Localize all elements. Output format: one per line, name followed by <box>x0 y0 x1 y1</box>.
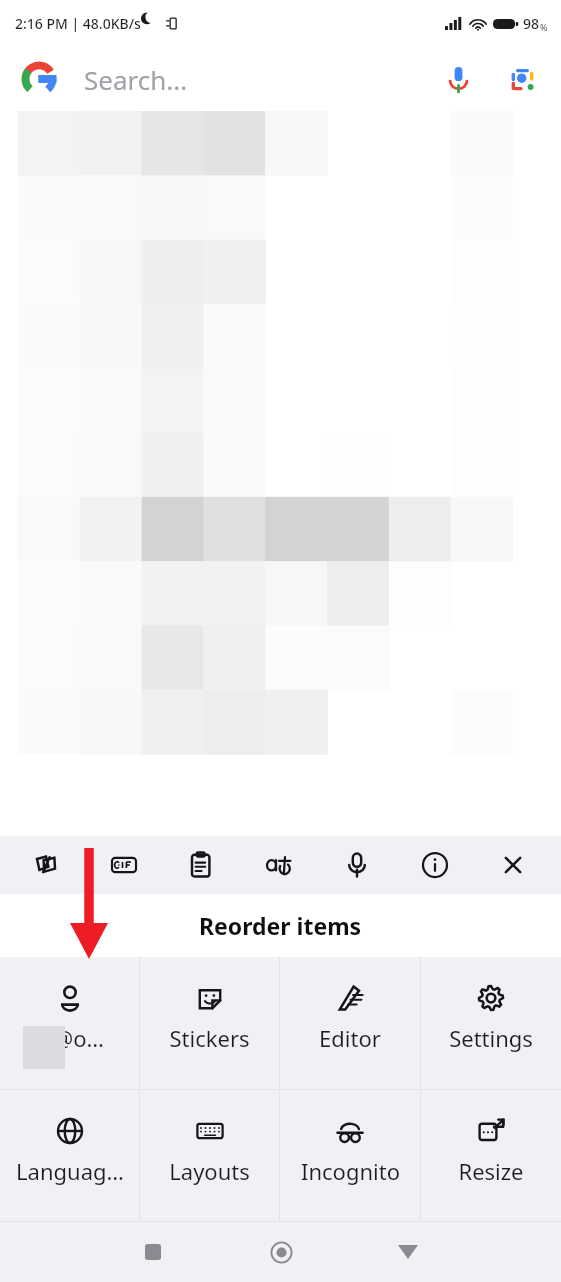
staticText: Search... <box>84 62 188 97</box>
button[interactable]: Search... <box>0 47 561 111</box>
button[interactable]: Incognito <box>280 1090 420 1221</box>
staticText: Languag… <box>16 1156 124 1186</box>
button[interactable]: Layouts <box>140 1090 279 1221</box>
staticText: Reorder items <box>199 910 362 941</box>
button[interactable]: Back <box>385 1229 431 1275</box>
button[interactable]: Translate <box>256 842 302 888</box>
staticText: 98 <box>523 14 540 33</box>
staticText: Editor <box>319 1023 381 1053</box>
button[interactable]: Close <box>490 842 536 888</box>
staticText: Stickers <box>169 1023 250 1053</box>
button[interactable]: Voice search <box>435 56 481 102</box>
button[interactable]: Languages <box>0 1090 139 1221</box>
button[interactable]: GIF <box>101 842 147 888</box>
staticText: …@o… <box>36 1023 104 1053</box>
staticText: Resize <box>458 1156 524 1186</box>
button[interactable]: Info <box>412 842 458 888</box>
button[interactable]: Google Lens <box>499 56 545 102</box>
button[interactable]: Stickers <box>140 957 279 1089</box>
button[interactable]: Resize <box>421 1090 561 1221</box>
staticText: Layouts <box>169 1156 250 1186</box>
button[interactable]: Recents <box>130 1229 176 1275</box>
staticText: % <box>540 21 548 33</box>
staticText: Incognito <box>301 1156 400 1186</box>
button[interactable]: Account <box>0 957 139 1089</box>
button[interactable]: Voice input <box>334 842 380 888</box>
button[interactable]: Themes <box>23 842 69 888</box>
button[interactable]: Home <box>258 1229 304 1275</box>
button[interactable]: Clipboard <box>178 842 224 888</box>
button[interactable]: Editor <box>280 957 420 1089</box>
staticText: 2:16 PM | 48.0KB/s <box>15 14 141 33</box>
staticText: Settings <box>449 1023 533 1053</box>
button[interactable]: Settings <box>421 957 561 1089</box>
